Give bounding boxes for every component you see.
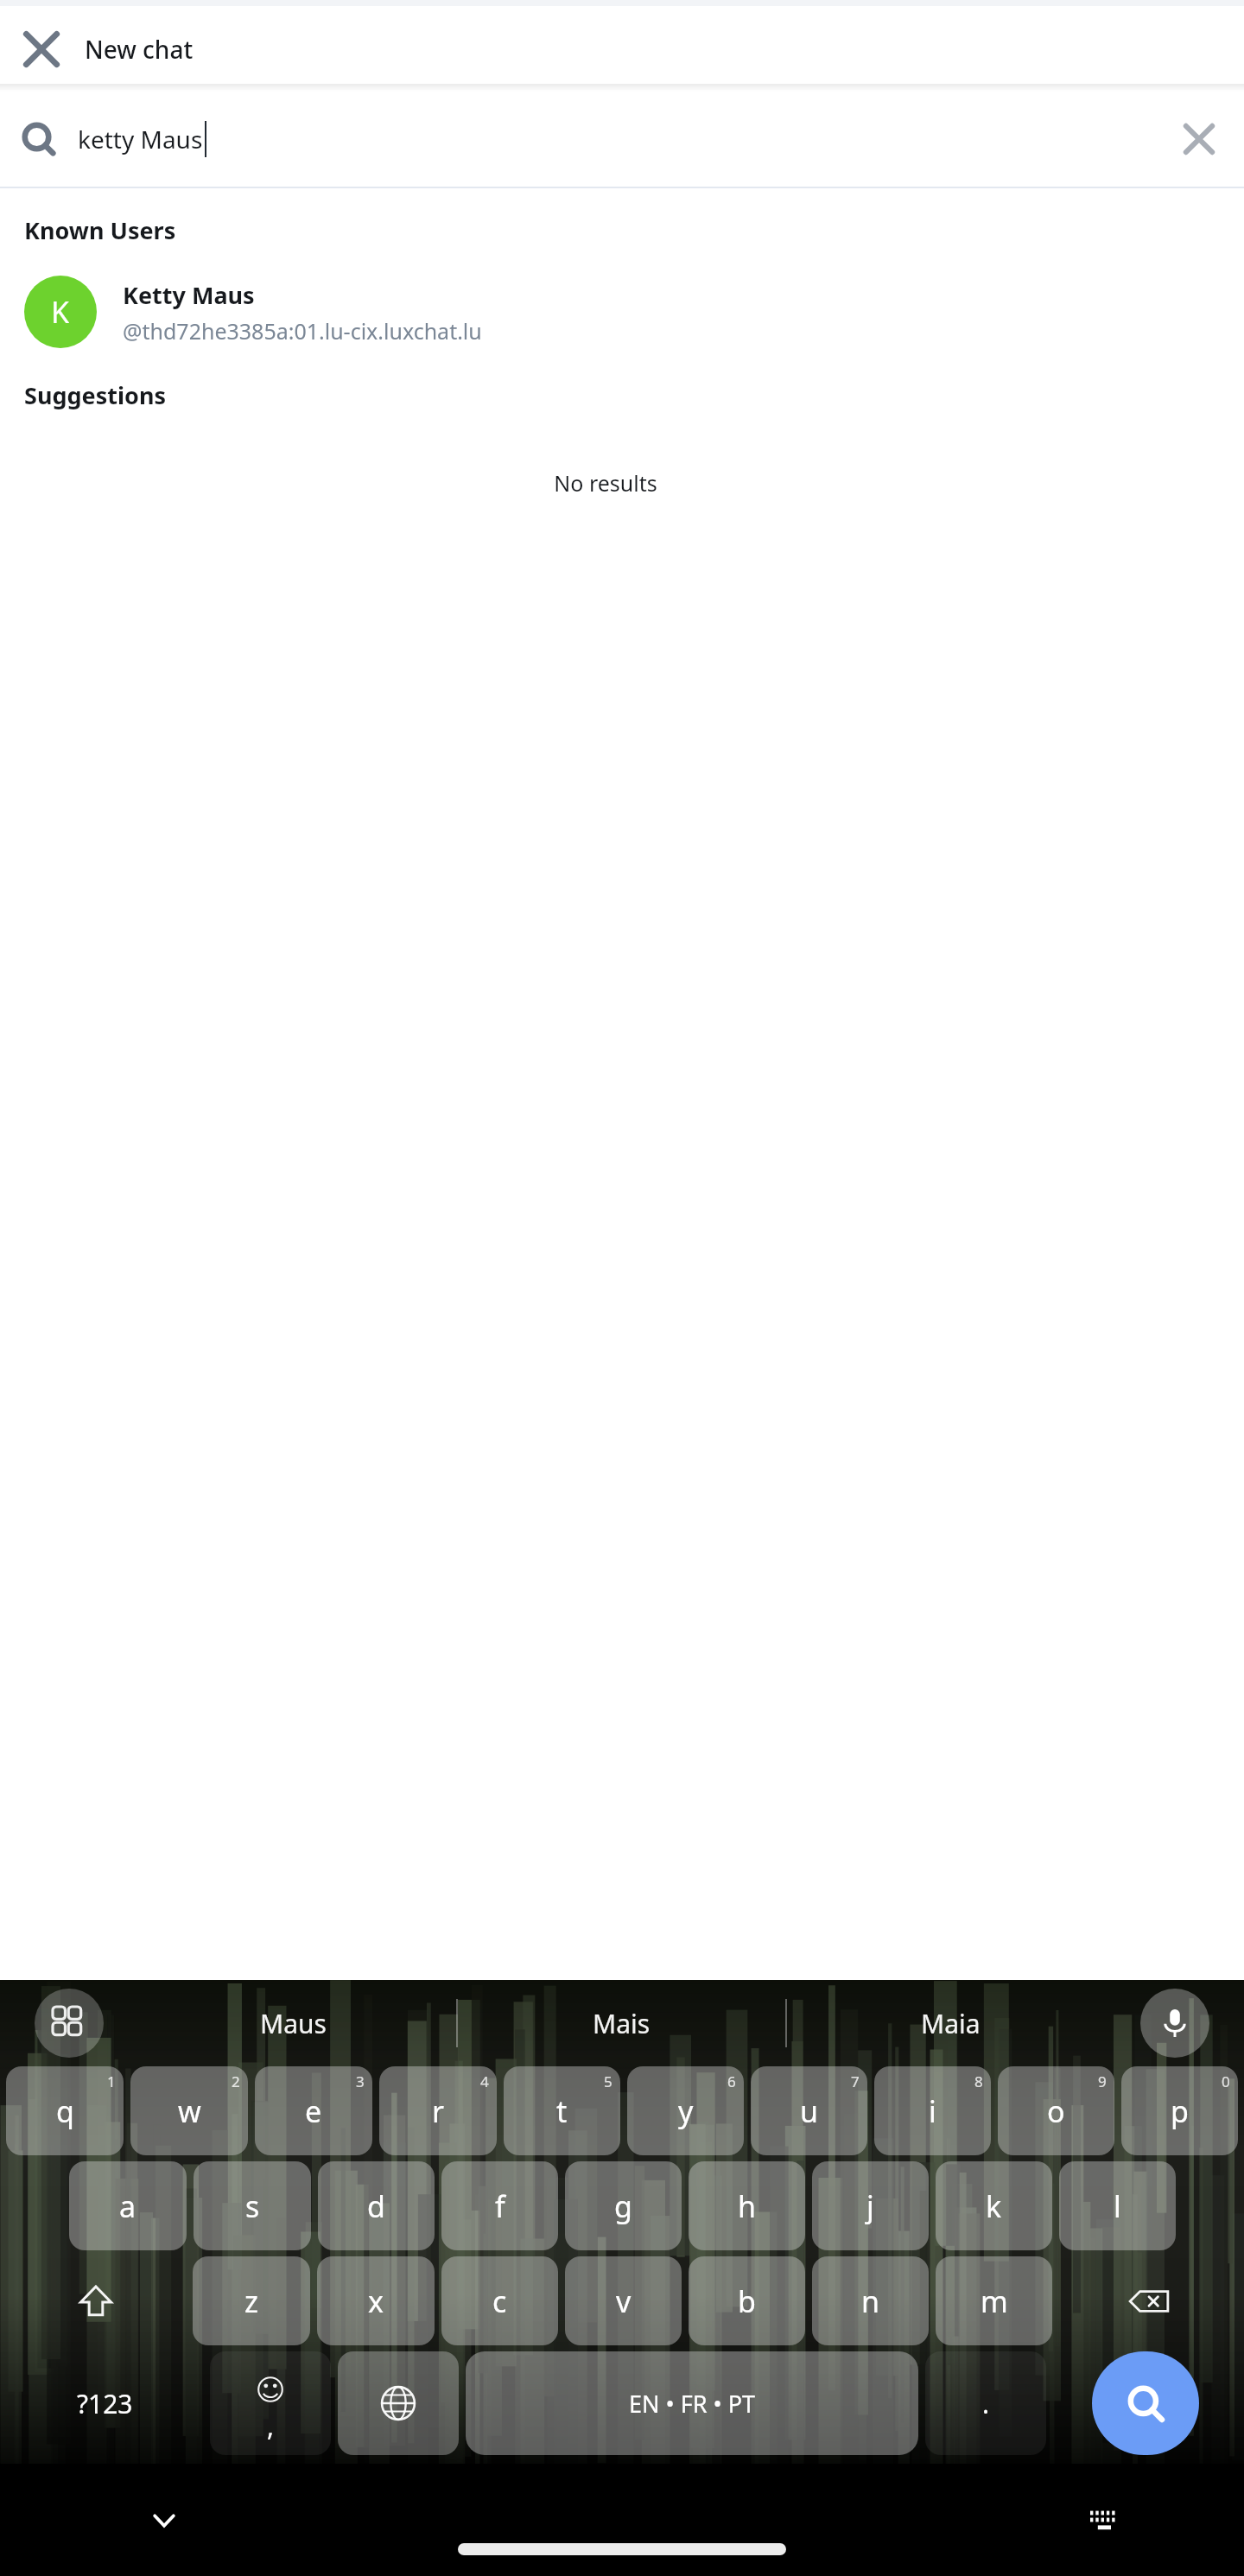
button[interactable]: j — [812, 2161, 929, 2250]
button[interactable]: b — [689, 2256, 805, 2345]
staticText: n — [861, 2281, 880, 2321]
staticText: m — [981, 2281, 1008, 2321]
staticText: d — [367, 2186, 385, 2226]
button[interactable]: f — [441, 2161, 558, 2250]
button[interactable]: K — [0, 270, 1244, 353]
staticText: w — [178, 2091, 201, 2131]
button[interactable]: Switch keyboard — [1069, 2485, 1139, 2554]
button[interactable]: u — [751, 2066, 867, 2155]
staticText: 5 — [604, 2072, 612, 2091]
button[interactable]: n — [812, 2256, 929, 2345]
staticText: Maus — [260, 2006, 327, 2041]
button[interactable]: Close — [10, 18, 73, 80]
staticText: EN • FR • PT — [629, 2388, 756, 2420]
button[interactable]: Clear search — [1173, 113, 1225, 165]
staticText: j — [866, 2186, 874, 2226]
button[interactable]: Change language — [338, 2351, 459, 2455]
button[interactable]: ?123 — [6, 2351, 203, 2455]
button[interactable]: w — [130, 2066, 248, 2155]
button[interactable]: s — [194, 2161, 311, 2250]
staticText: New chat — [85, 33, 194, 66]
staticText: . — [982, 2386, 990, 2421]
button[interactable]: . — [925, 2351, 1046, 2455]
button[interactable]: Search — [1092, 2351, 1199, 2455]
button[interactable]: v — [565, 2256, 682, 2345]
staticText: 7 — [851, 2072, 860, 2091]
button[interactable]: z — [193, 2256, 310, 2345]
staticText: 0 — [1222, 2072, 1230, 2091]
button[interactable]: Keyboard modes — [35, 1989, 104, 2058]
staticText: K — [51, 292, 70, 332]
staticText: y — [678, 2091, 694, 2131]
staticText: b — [738, 2281, 756, 2321]
staticText: c — [492, 2281, 507, 2321]
button[interactable]: Mais — [458, 1980, 785, 2066]
staticText: s — [245, 2186, 260, 2226]
staticText: q — [56, 2091, 74, 2131]
button[interactable]: Emoji — [210, 2351, 331, 2455]
button[interactable]: k — [936, 2161, 1052, 2250]
staticText: 6 — [727, 2072, 736, 2091]
button[interactable]: g — [565, 2161, 682, 2250]
staticText: f — [495, 2186, 505, 2226]
button[interactable]: Shift — [6, 2256, 186, 2345]
staticText: @thd72he3385a:01.lu-cix.luxchat.lu — [123, 316, 482, 346]
staticText: g — [614, 2186, 632, 2226]
staticText: h — [738, 2186, 757, 2226]
staticText: l — [1114, 2186, 1121, 2226]
button[interactable]: o — [998, 2066, 1114, 2155]
staticText: 3 — [356, 2072, 365, 2091]
button[interactable]: a — [69, 2161, 187, 2250]
staticText: Known Users — [24, 214, 176, 246]
button[interactable]: EN • FR • PT — [466, 2351, 918, 2455]
staticText: i — [929, 2091, 936, 2131]
button[interactable]: Maia — [787, 1980, 1114, 2066]
button[interactable]: Maus — [130, 1980, 456, 2066]
button[interactable]: p — [1121, 2066, 1238, 2155]
staticText: p — [1171, 2091, 1189, 2131]
staticText: , — [267, 2408, 275, 2444]
staticText: ?123 — [77, 2386, 133, 2421]
staticText: 1 — [107, 2072, 116, 2091]
button[interactable]: e — [255, 2066, 372, 2155]
staticText: Ketty Maus — [123, 279, 255, 311]
staticText: o — [1047, 2091, 1065, 2131]
button[interactable]: Hide keyboard — [130, 2485, 199, 2554]
staticText: r — [432, 2091, 445, 2131]
button[interactable]: m — [936, 2256, 1052, 2345]
staticText: u — [800, 2091, 819, 2131]
staticText: v — [616, 2281, 632, 2321]
button[interactable]: Voice input — [1140, 1989, 1209, 2058]
staticText: 4 — [480, 2072, 489, 2091]
staticText: a — [119, 2186, 136, 2226]
staticText: 8 — [974, 2072, 983, 2091]
button[interactable]: y — [627, 2066, 744, 2155]
staticText: x — [368, 2281, 384, 2321]
button[interactable]: t — [504, 2066, 620, 2155]
staticText: e — [305, 2091, 322, 2131]
button[interactable]: Backspace — [1059, 2256, 1238, 2345]
button[interactable]: q — [6, 2066, 124, 2155]
button[interactable]: h — [689, 2161, 805, 2250]
staticText: No results — [0, 468, 1211, 498]
staticText: k — [986, 2186, 1002, 2226]
button[interactable]: l — [1059, 2161, 1176, 2250]
staticText: Maia — [921, 2006, 981, 2041]
staticText: ketty Maus — [78, 123, 203, 155]
button[interactable]: d — [318, 2161, 435, 2250]
button[interactable]: i — [874, 2066, 991, 2155]
button[interactable]: ketty Maus — [0, 92, 1244, 187]
staticText: 2 — [232, 2072, 240, 2091]
button[interactable]: r — [379, 2066, 497, 2155]
staticText: z — [244, 2281, 258, 2321]
button[interactable]: c — [441, 2256, 558, 2345]
staticText: Suggestions — [24, 379, 166, 411]
staticText: Mais — [593, 2006, 651, 2041]
staticText: 9 — [1098, 2072, 1107, 2091]
button[interactable]: x — [317, 2256, 435, 2345]
staticText: t — [556, 2091, 568, 2131]
